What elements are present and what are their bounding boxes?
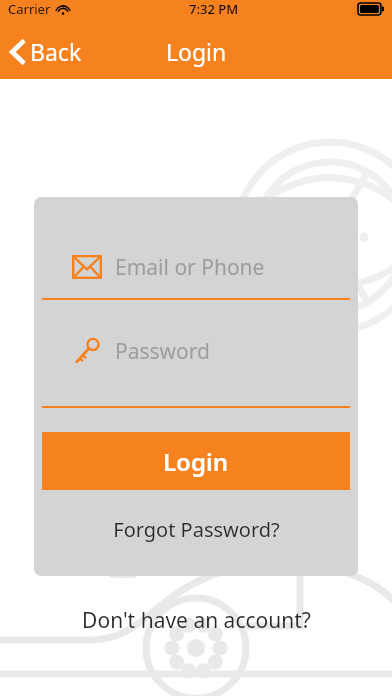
staticText: Back bbox=[30, 36, 82, 67]
staticText: Forgot Password? bbox=[113, 516, 280, 543]
button[interactable]: Password bbox=[34, 323, 358, 379]
staticText: Login bbox=[163, 445, 229, 478]
button[interactable]: Back bbox=[0, 30, 94, 73]
button[interactable]: Forgot Password? bbox=[34, 509, 358, 549]
staticText: Carrier bbox=[8, 0, 51, 18]
staticText: Password bbox=[115, 337, 210, 366]
staticText: 7:32 PM bbox=[189, 0, 239, 18]
button[interactable]: Email or Phone bbox=[34, 242, 358, 292]
staticText: Don't have an account? bbox=[82, 606, 311, 635]
staticText: Login bbox=[166, 36, 227, 67]
button[interactable]: Login bbox=[42, 432, 350, 490]
staticText: Email or Phone bbox=[115, 253, 265, 282]
button[interactable]: Don't have an account? bbox=[0, 599, 392, 641]
